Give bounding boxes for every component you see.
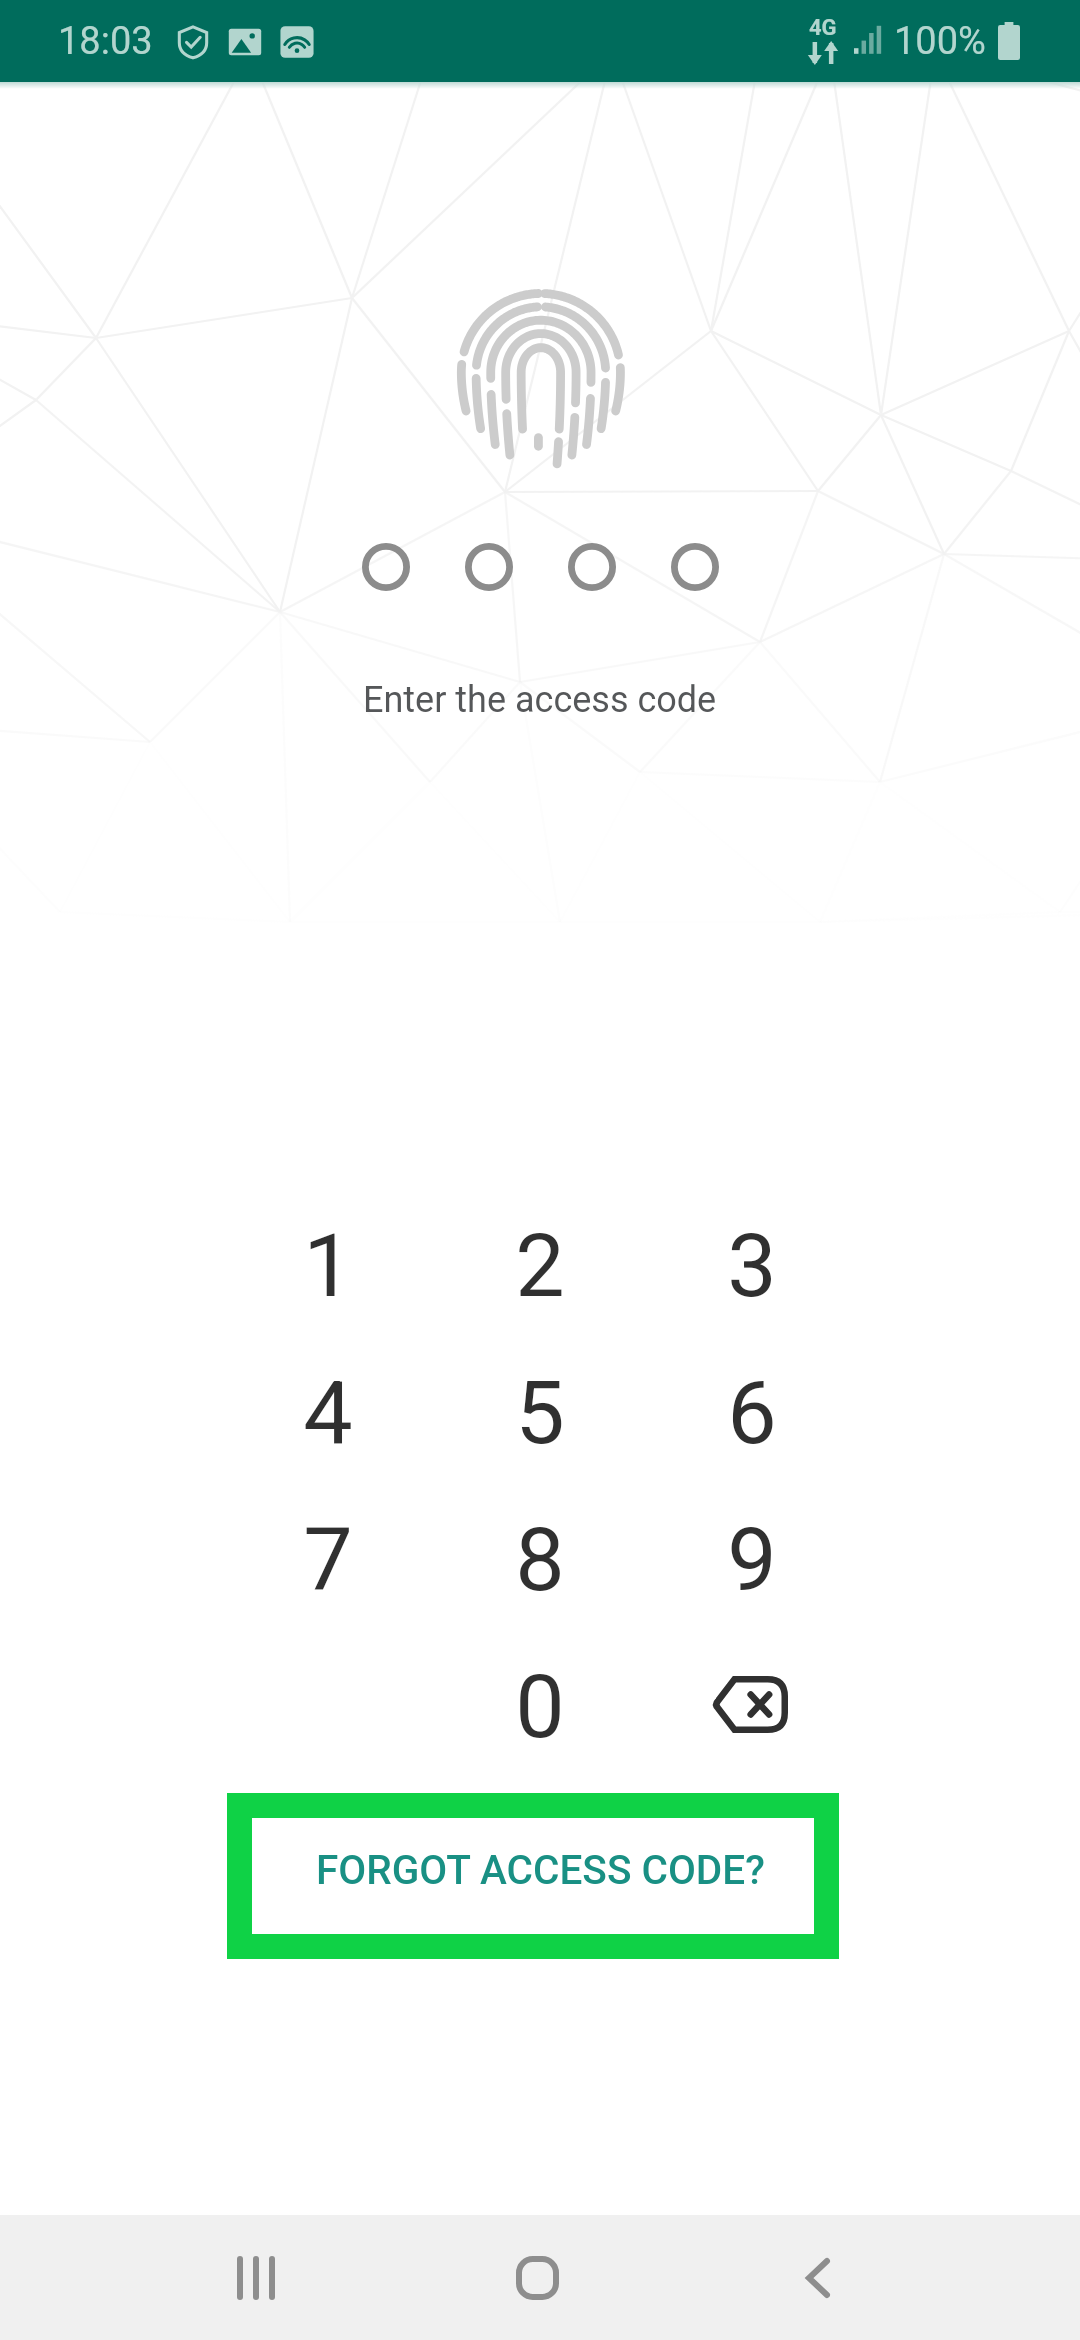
button[interactable]: 3 bbox=[646, 1192, 858, 1339]
button[interactable]: Back bbox=[742, 2215, 894, 2340]
staticText: FORGOT ACCESS CODE? bbox=[316, 1846, 765, 1893]
button[interactable]: 2 bbox=[434, 1192, 646, 1339]
button[interactable]: FORGOT ACCESS CODE? bbox=[252, 1818, 814, 1934]
staticText: 0 bbox=[515, 1655, 565, 1758]
staticText: 7 bbox=[303, 1508, 353, 1611]
button[interactable]: 0 bbox=[434, 1633, 646, 1780]
staticText: Enter the access code bbox=[363, 679, 717, 721]
button[interactable]: Home bbox=[461, 2215, 613, 2340]
staticText: 8 bbox=[515, 1508, 565, 1611]
staticText: 4G bbox=[809, 15, 837, 41]
button[interactable]: 8 bbox=[434, 1486, 646, 1633]
staticText: 3 bbox=[727, 1214, 777, 1317]
button[interactable]: Recent apps bbox=[180, 2215, 332, 2340]
staticText: 4 bbox=[303, 1361, 353, 1464]
staticText: 2 bbox=[515, 1214, 565, 1317]
button[interactable]: Backspace bbox=[646, 1633, 858, 1780]
staticText: 5 bbox=[515, 1361, 565, 1464]
staticText: 9 bbox=[727, 1508, 777, 1611]
staticText: 100% bbox=[894, 19, 986, 64]
staticText: 6 bbox=[727, 1361, 777, 1464]
button[interactable]: 7 bbox=[222, 1486, 434, 1633]
button[interactable]: 6 bbox=[646, 1339, 858, 1486]
button[interactable]: 5 bbox=[434, 1339, 646, 1486]
button[interactable]: 9 bbox=[646, 1486, 858, 1633]
button[interactable]: 1 bbox=[222, 1192, 434, 1339]
button[interactable]: 4 bbox=[222, 1339, 434, 1486]
staticText: 1 bbox=[303, 1214, 353, 1317]
staticText: 18:03 bbox=[58, 19, 153, 64]
